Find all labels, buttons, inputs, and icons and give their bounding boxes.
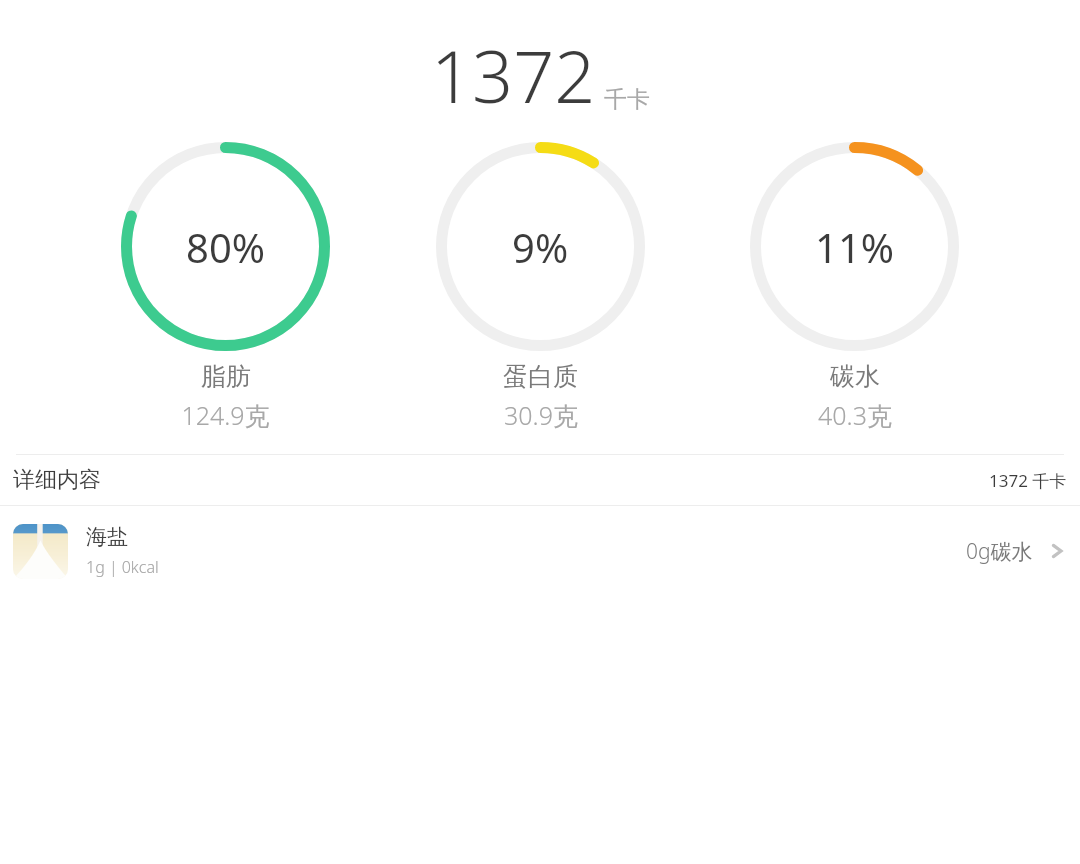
staticText: 1g | 0kcal	[86, 556, 159, 578]
staticText: 千卡	[604, 85, 650, 114]
button[interactable]: 详细内容	[0, 455, 1080, 505]
staticText: 80%	[186, 220, 265, 274]
button[interactable]: 9%	[436, 142, 645, 432]
staticText: 40.3克	[818, 398, 892, 432]
staticText: 碳水	[830, 361, 880, 392]
staticText: 详细内容	[13, 466, 101, 494]
staticText: 脂肪	[201, 361, 251, 392]
staticText: 9%	[512, 220, 569, 274]
button[interactable]: 11%	[750, 142, 959, 432]
staticText: 11%	[815, 220, 894, 274]
other: 查看详情	[1047, 541, 1067, 561]
staticText: 30.9克	[504, 398, 578, 432]
staticText: 1372 千卡	[989, 469, 1067, 492]
staticText: 1372	[431, 26, 596, 124]
staticText: 蛋白质	[503, 361, 578, 392]
staticText: 0g碳水	[966, 537, 1033, 566]
staticText: 海盐	[86, 524, 128, 550]
button[interactable]: 80%	[121, 142, 330, 432]
button[interactable]: 海盐	[0, 506, 1080, 596]
staticText: 124.9克	[181, 398, 270, 432]
